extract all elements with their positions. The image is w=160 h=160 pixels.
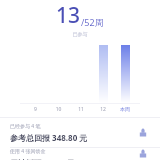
button[interactable]: 已经参与 4 笔 [0,118,160,147]
staticText: 已参与 [0,31,160,37]
staticText: 已经参与 4 笔 [10,123,41,130]
staticText: 参考总回报 348.80 元 [10,132,88,143]
staticText: 使用 4 张回馈金 [10,148,46,155]
button[interactable]: 使用 4 张回馈金 [0,148,160,160]
staticText: 9 [24,106,47,113]
staticText: 10 [47,106,70,113]
staticText: /52周 [81,16,104,28]
staticText: 本周 [114,106,136,112]
staticText: 13 [56,1,81,30]
staticText: 11 [70,106,92,113]
other: Cashback details [136,148,150,160]
staticText: 累计抵现 10.00 元 [10,157,75,160]
staticText: 12 [92,106,114,113]
other: Reward details [136,126,150,140]
